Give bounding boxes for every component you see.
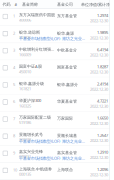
staticText: 嘉实兴业先锋 — [19, 149, 43, 154]
staticText: 1.2096 — [97, 167, 108, 172]
staticText: 161826 — [19, 35, 31, 40]
staticText: 7 — [13, 116, 15, 121]
staticText: 2 — [13, 30, 15, 36]
button[interactable]: 8 — [0, 129, 114, 146]
staticText: 3 — [13, 48, 15, 53]
staticText: 6 — [13, 99, 15, 104]
staticText: 1.2647 — [97, 132, 108, 138]
staticText: 450010 — [19, 69, 31, 74]
staticText: 2022-12-30 — [90, 52, 108, 58]
staticText: 中欧基金分 — [57, 48, 77, 52]
staticText: 000135 — [19, 172, 31, 177]
staticText: 银华-道琼斯 — [19, 29, 40, 35]
button[interactable]: 9 — [0, 146, 114, 163]
staticText: 景顺增长贰号 — [19, 132, 43, 137]
staticText: 华夏沪深300 — [19, 98, 41, 103]
staticText: 2022-12-30 — [90, 18, 108, 23]
staticText: 国富中证A股 — [19, 64, 42, 69]
staticText: 银华-鑫源分 — [57, 82, 78, 87]
staticText: 1.9895 — [97, 30, 108, 35]
button[interactable]: 5 — [0, 77, 114, 94]
staticText: 166009 — [19, 52, 31, 57]
staticText: 5 — [13, 82, 15, 87]
button[interactable]: 2 — [0, 26, 114, 43]
staticText: 万家国际配置二级 — [19, 115, 51, 120]
staticText: 银华-鑫源 — [57, 30, 74, 36]
button[interactable]: 10 — [0, 163, 114, 180]
staticText: 1.2974 — [97, 13, 108, 18]
staticText: 2022-12-30 — [90, 35, 108, 40]
staticText: 代码 — [2, 2, 10, 7]
staticText: 万家国际 — [57, 116, 73, 121]
staticText: 2022-12-30 — [90, 104, 108, 109]
staticText: 上海联合 — [57, 167, 73, 172]
staticText: 中欧增利分红增强分类型 — [19, 47, 57, 52]
button[interactable]: 7 — [0, 112, 114, 129]
staticText: 070011 — [19, 154, 31, 159]
staticText: 2022-12-30 — [90, 155, 108, 160]
staticText: 基金公司 — [57, 2, 73, 7]
staticText: 4 — [13, 65, 15, 70]
staticText: 2022-12-30 — [90, 121, 108, 126]
staticText: 6.4194 — [97, 47, 108, 52]
staticText: 景顺长城基 — [57, 133, 77, 138]
staticText: 2022-12-30 — [90, 172, 108, 177]
staticText: 千基金市场指数型(LOF) 潍坊之光业绩基准指数 — [19, 138, 85, 144]
staticText: 2022-12-30 — [90, 86, 108, 92]
staticText: 银华-鑫源分级 — [19, 81, 44, 86]
staticText: 华夏基金管 — [57, 99, 77, 104]
staticText: 1.8287 — [97, 64, 108, 69]
staticText: 嘉实基金管 — [57, 150, 77, 155]
staticText: 10 — [13, 167, 17, 173]
staticText: 519186 — [19, 120, 31, 125]
staticText: 上海联合-中航债券 — [19, 166, 52, 172]
button[interactable]: 4 — [0, 60, 114, 77]
staticText: 国富基金管 — [57, 65, 77, 70]
staticText: 8 — [13, 133, 15, 138]
staticText: 2.4194 — [97, 81, 108, 86]
staticText: 基金简称 — [22, 2, 38, 7]
staticText: # — [14, 2, 17, 7]
button[interactable]: 3 — [0, 43, 114, 60]
button[interactable]: 6 — [0, 94, 114, 112]
staticText: 2022-12-30 — [90, 69, 108, 75]
staticText: 260108 — [19, 137, 31, 142]
staticText: 1.2910 — [97, 150, 108, 155]
staticText: 4.7221 — [97, 98, 108, 104]
staticText: 2022-12-30 — [90, 138, 108, 143]
staticText: 1.6650 — [97, 115, 108, 121]
staticText: 161821 — [19, 86, 31, 91]
staticText: 千基金市场指数型(LOF) 潍坊之光业绩基准指数 — [19, 36, 85, 41]
staticText: 160325 — [19, 103, 31, 108]
staticText: 400006 — [19, 17, 31, 23]
staticText: 单位净值(累计净值) — [81, 2, 114, 7]
staticText: 千基金市场指数型(LOF) 潍坊之光业绩基准指数 — [19, 156, 85, 161]
staticText: 东方兴瑞医药中国股 — [19, 12, 55, 17]
button[interactable]: 1 — [0, 9, 114, 26]
staticText: 东方基金管 — [57, 13, 77, 18]
staticText: 9 — [13, 150, 15, 155]
staticText: 1 — [13, 13, 15, 19]
